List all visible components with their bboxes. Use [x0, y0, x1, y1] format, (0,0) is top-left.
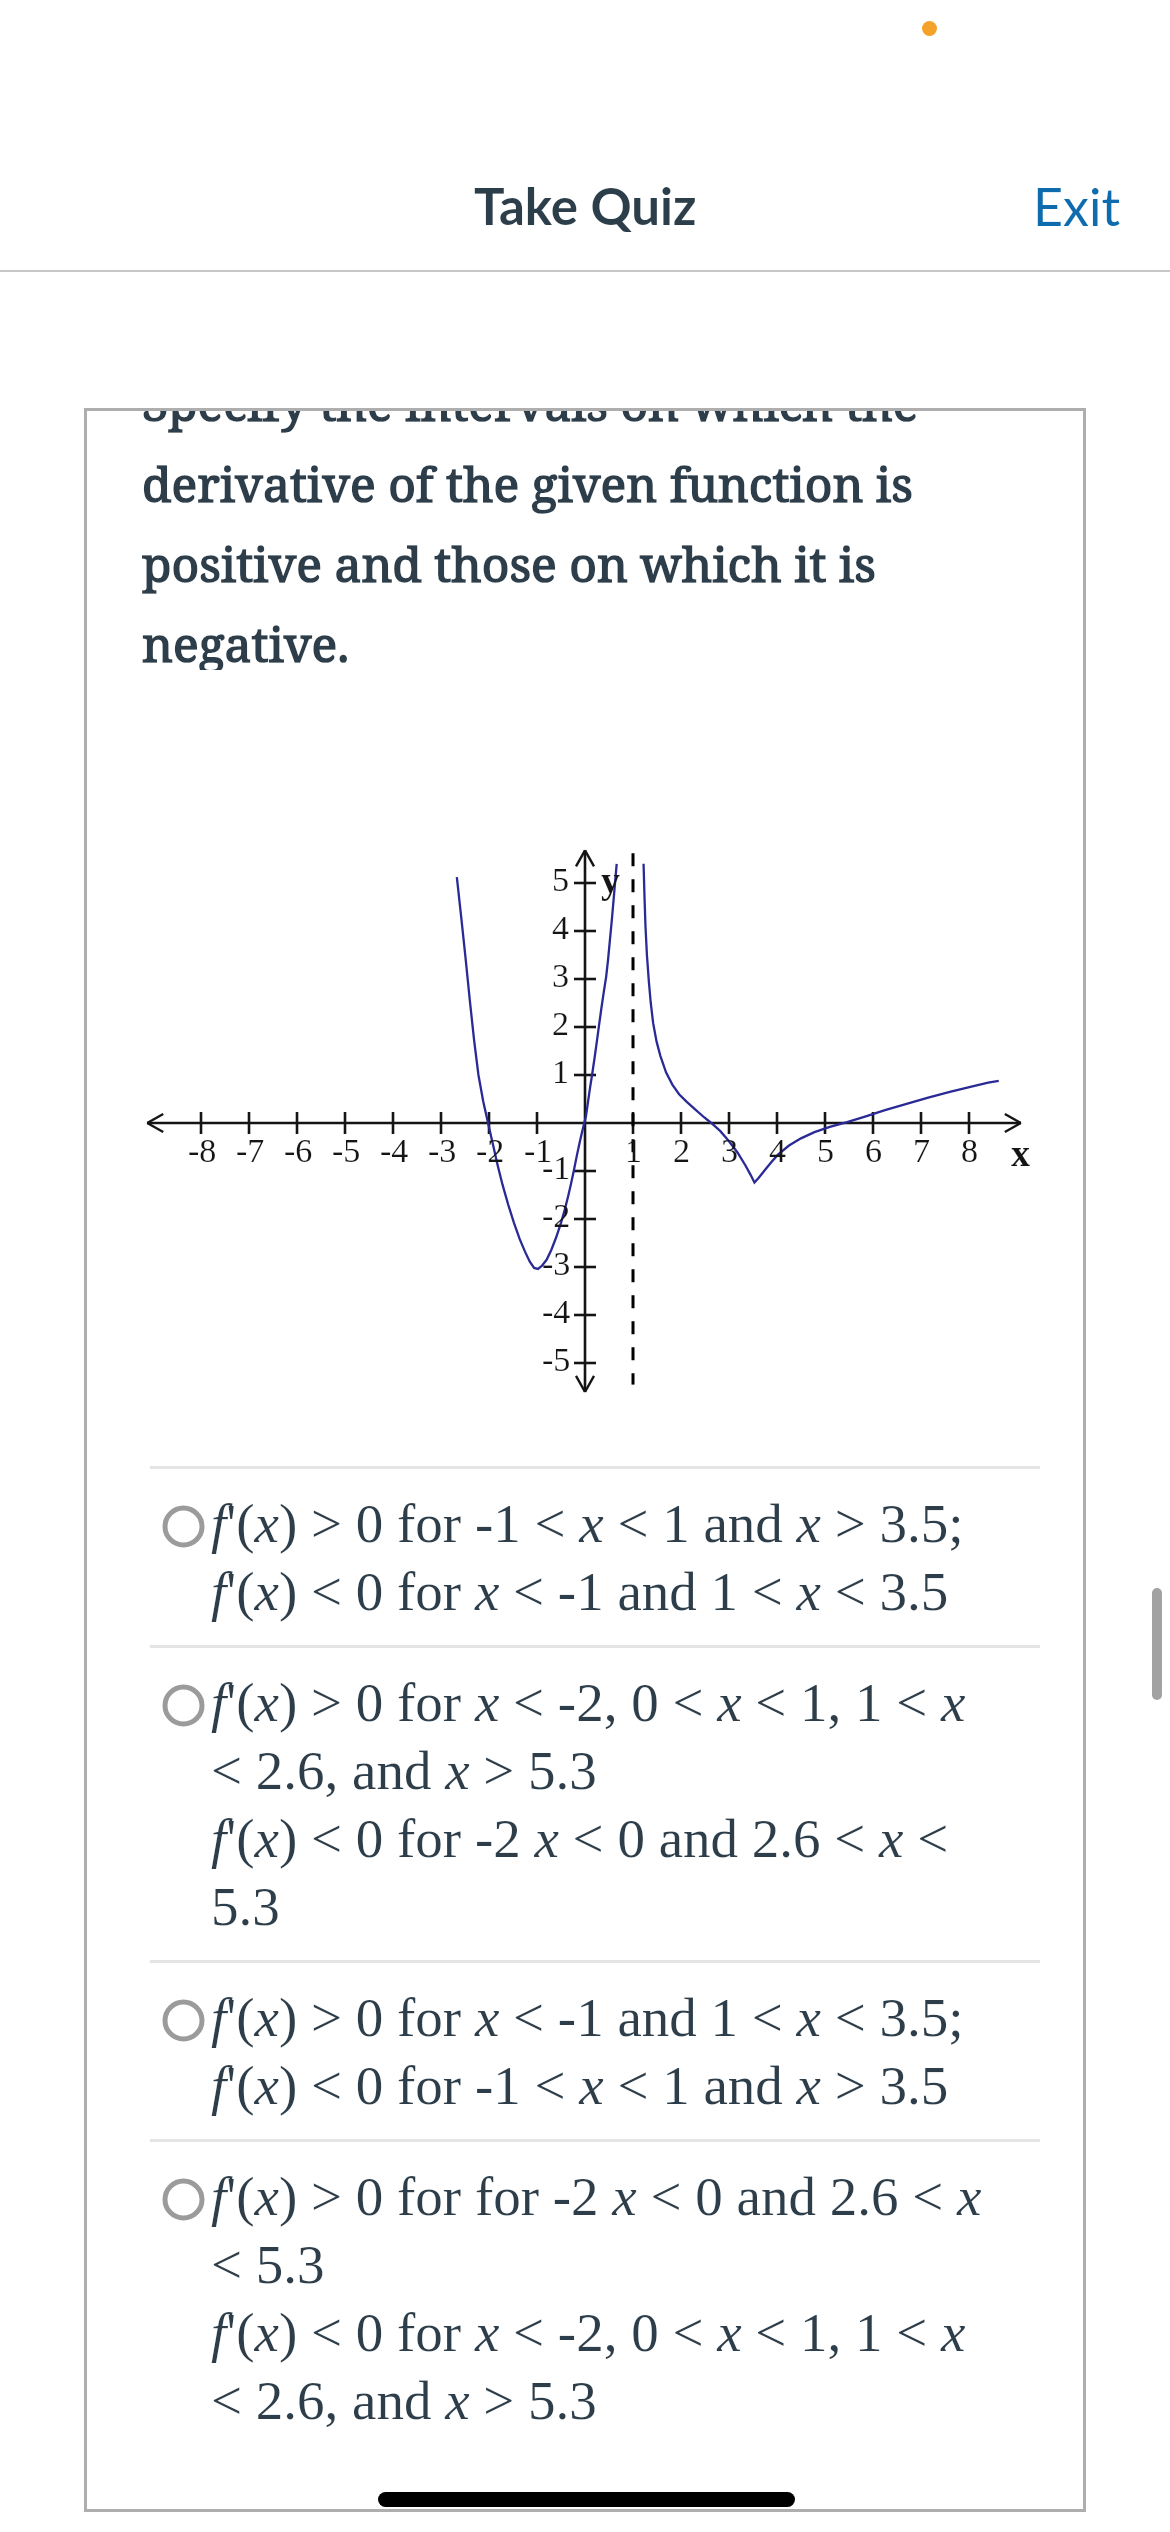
staticText: 8 [961, 1132, 978, 1170]
button[interactable]: Exit [993, 169, 1170, 243]
staticText: 4 [552, 909, 569, 947]
button[interactable]: Answer option: f'(x) > 0 for for -2 x < … [150, 2142, 1040, 2454]
staticText: -5 [542, 1341, 571, 1379]
button[interactable]: Answer option: f'(x) > 0 for x < -1 and … [150, 1963, 1040, 2139]
staticText: 4 [769, 1132, 786, 1170]
staticText: -7 [236, 1132, 265, 1170]
staticText: 3 [721, 1132, 738, 1170]
staticText: -4 [542, 1293, 571, 1331]
staticText: 2 [552, 1005, 569, 1043]
staticText: y [601, 859, 620, 901]
staticText: 6 [865, 1132, 882, 1170]
staticText: -3 [428, 1132, 457, 1170]
staticText: 7 [913, 1132, 930, 1170]
staticText: -1 [542, 1149, 571, 1187]
staticText: -6 [284, 1132, 313, 1170]
button[interactable]: Answer option: f'(x) > 0 for -1 < x < 1 … [150, 1469, 1040, 1645]
staticText: f'(x) > 0 for x < -2, 0 < x < 1, 1 < x <… [211, 1672, 966, 1937]
staticText: 1 [625, 1132, 642, 1170]
staticText: Take Quiz [474, 175, 697, 236]
button[interactable]: Take Quiz [458, 169, 713, 242]
staticText: 1 [552, 1053, 569, 1091]
staticText: -4 [380, 1132, 409, 1170]
staticText: x [1011, 1132, 1030, 1174]
staticText: -2 [542, 1197, 571, 1235]
staticText: f'(x) > 0 for for -2 x < 0 and 2.6 < x <… [211, 2166, 982, 2431]
staticText: -1 [524, 1132, 553, 1170]
staticText: 3 [552, 957, 569, 995]
staticText: f'(x) > 0 for -1 < x < 1 and x > 3.5; f'… [211, 1493, 964, 1622]
staticText: 5 [552, 861, 569, 899]
staticText: f'(x) > 0 for x < -1 and 1 < x < 3.5; f'… [211, 1987, 964, 2116]
staticText: Exit [1033, 175, 1121, 237]
staticText: -5 [332, 1132, 361, 1170]
staticText: -2 [476, 1132, 505, 1170]
staticText: -8 [188, 1132, 217, 1170]
staticText: Specify the intervals on which the deriv… [142, 411, 932, 670]
staticText: 5 [817, 1132, 834, 1170]
button[interactable]: Answer option: f'(x) > 0 for x < -2, 0 <… [150, 1648, 1040, 1960]
staticText: -3 [542, 1245, 571, 1283]
staticText: 2 [673, 1132, 690, 1170]
